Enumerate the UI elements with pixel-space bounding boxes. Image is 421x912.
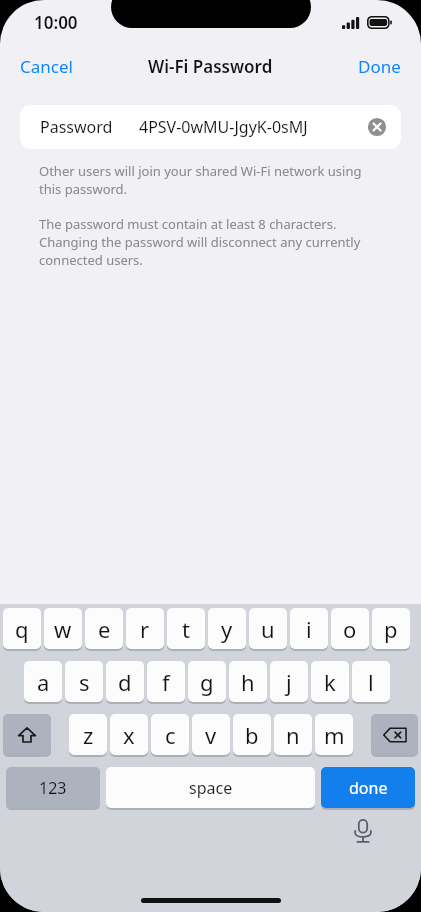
staticText: b: [245, 720, 259, 750]
button[interactable]: Cancel: [0, 46, 93, 87]
staticText: Wi-Fi Password: [148, 55, 273, 78]
button[interactable]: t: [167, 608, 205, 650]
staticText: l: [368, 667, 374, 697]
button[interactable]: 123: [6, 767, 100, 809]
button[interactable]: z: [69, 714, 107, 756]
button[interactable]: q: [3, 608, 41, 650]
button[interactable]: Password: [20, 105, 401, 149]
staticText: h: [241, 667, 255, 697]
staticText: q: [15, 614, 29, 644]
staticText: k: [324, 667, 336, 697]
staticText: i: [306, 614, 312, 644]
staticText: z: [83, 720, 94, 750]
button[interactable]: b: [233, 714, 271, 756]
staticText: c: [165, 720, 176, 750]
button[interactable]: h: [229, 661, 267, 703]
button[interactable]: Dictate: [349, 817, 377, 845]
staticText: y: [221, 614, 233, 644]
staticText: o: [343, 614, 357, 644]
button[interactable]: Clear text: [364, 114, 390, 140]
button[interactable]: l: [352, 661, 390, 703]
staticText: a: [37, 667, 50, 697]
button[interactable]: y: [208, 608, 246, 650]
staticText: m: [324, 720, 345, 750]
button[interactable]: g: [188, 661, 226, 703]
button[interactable]: o: [331, 608, 369, 650]
staticText: Other users will join your shared Wi-Fi …: [39, 162, 362, 198]
button[interactable]: Done: [338, 46, 421, 87]
staticText: v: [205, 720, 217, 750]
button[interactable]: f: [147, 661, 185, 703]
staticText: u: [261, 614, 275, 644]
staticText: n: [286, 720, 300, 750]
staticText: r: [140, 614, 150, 644]
staticText: j: [286, 667, 292, 697]
staticText: done: [349, 777, 388, 799]
staticText: p: [384, 614, 398, 644]
button[interactable]: Shift: [3, 714, 51, 756]
button[interactable]: Backspace: [371, 714, 418, 756]
button[interactable]: x: [110, 714, 148, 756]
button[interactable]: e: [85, 608, 123, 650]
staticText: 10:00: [34, 11, 78, 34]
button[interactable]: a: [24, 661, 62, 703]
button[interactable]: i: [290, 608, 328, 650]
button[interactable]: v: [192, 714, 230, 756]
button[interactable]: u: [249, 608, 287, 650]
staticText: Done: [358, 55, 401, 78]
staticText: 4PSV-0wMU-JgyK-0sMJ: [139, 116, 308, 138]
staticText: space: [189, 777, 233, 799]
staticText: x: [123, 720, 135, 750]
button[interactable]: space: [106, 767, 315, 809]
button[interactable]: k: [311, 661, 349, 703]
button[interactable]: r: [126, 608, 164, 650]
staticText: The password must contain at least 8 cha…: [39, 215, 361, 269]
button[interactable]: m: [315, 714, 353, 756]
button[interactable]: j: [270, 661, 308, 703]
staticText: e: [98, 614, 111, 644]
button[interactable]: done: [321, 767, 415, 809]
staticText: w: [54, 614, 72, 644]
staticText: Cancel: [20, 55, 73, 78]
staticText: f: [162, 667, 170, 697]
button[interactable]: d: [106, 661, 144, 703]
staticText: g: [200, 667, 214, 697]
staticText: 123: [39, 777, 67, 799]
button[interactable]: w: [44, 608, 82, 650]
button[interactable]: c: [151, 714, 189, 756]
staticText: Password: [40, 116, 113, 138]
button[interactable]: p: [372, 608, 410, 650]
staticText: t: [182, 614, 190, 644]
button[interactable]: s: [65, 661, 103, 703]
button[interactable]: n: [274, 714, 312, 756]
staticText: s: [79, 667, 90, 697]
staticText: d: [118, 667, 132, 697]
